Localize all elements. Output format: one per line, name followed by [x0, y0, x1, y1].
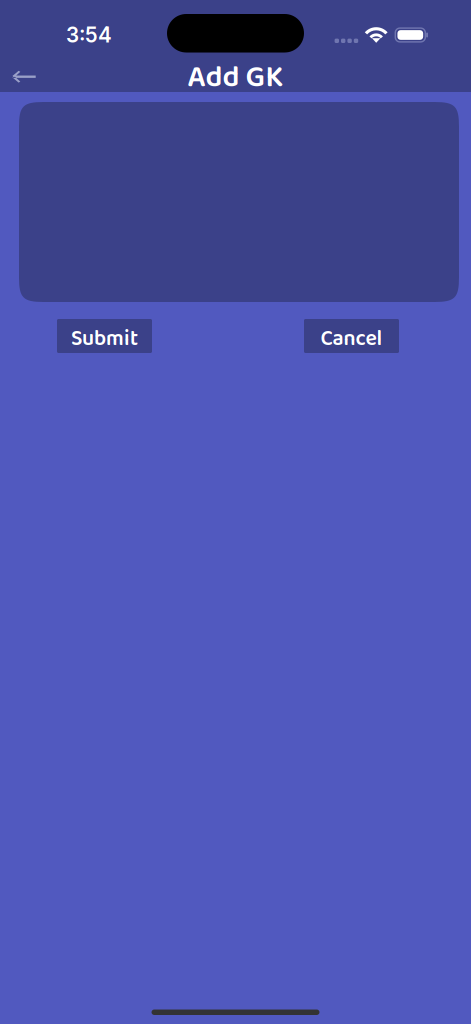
staticText: Cancel [320, 322, 382, 356]
button[interactable]: Back [0, 60, 52, 90]
staticText: Add GK [187, 54, 283, 102]
button[interactable]: Submit [57, 319, 152, 353]
staticText: Submit [71, 322, 138, 356]
staticText: 3:54 [66, 22, 112, 47]
button[interactable]: Cancel [304, 319, 399, 353]
